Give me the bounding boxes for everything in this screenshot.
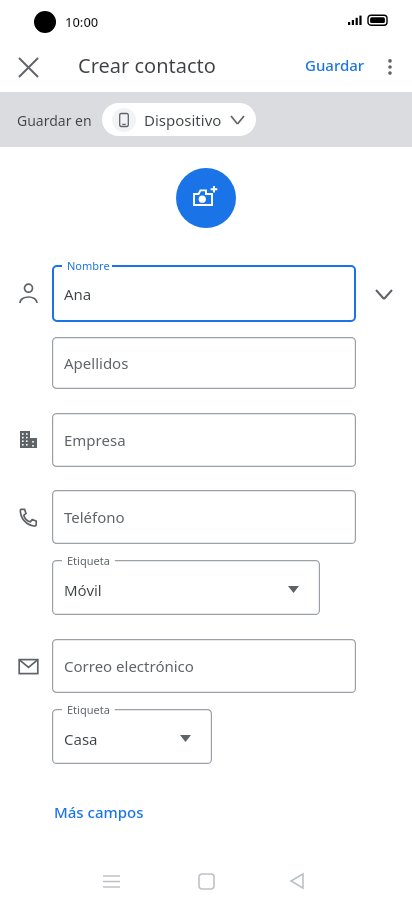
button[interactable]: Dispositivo xyxy=(102,103,256,136)
button[interactable]: Apellidos xyxy=(52,337,356,389)
staticText: Nombre xyxy=(67,258,110,273)
button[interactable]: Ana xyxy=(52,265,356,322)
staticText: Etiqueta xyxy=(67,702,110,717)
button[interactable]: Inicio xyxy=(186,861,226,901)
button[interactable]: Teléfono xyxy=(52,490,356,544)
staticText: Guardar en xyxy=(17,111,92,130)
staticText: Apellidos xyxy=(64,353,129,373)
button[interactable]: Atrás xyxy=(277,861,317,901)
button[interactable]: Expandir nombre xyxy=(364,274,404,314)
staticText: Móvil xyxy=(64,580,102,600)
button[interactable]: Más campos xyxy=(46,797,152,827)
staticText: Dispositivo xyxy=(144,110,222,130)
button[interactable]: Etiqueta xyxy=(52,709,212,764)
button[interactable]: Más opciones xyxy=(370,47,410,87)
button[interactable]: Añadir foto de contacto xyxy=(176,168,236,228)
staticText: Guardar xyxy=(305,55,365,75)
staticText: Crear contacto xyxy=(78,52,216,79)
staticText: Ana xyxy=(64,284,92,304)
staticText: 10:00 xyxy=(65,13,99,31)
staticText: Etiqueta xyxy=(67,553,110,568)
button[interactable]: Empresa xyxy=(52,413,356,467)
staticText: Más campos xyxy=(54,802,144,822)
button[interactable]: Correo electrónico xyxy=(52,639,356,693)
button[interactable]: Guardar xyxy=(297,49,373,81)
staticText: Casa xyxy=(64,729,98,749)
staticText: Correo electrónico xyxy=(64,656,194,676)
button[interactable]: Aplicaciones recientes xyxy=(91,861,131,901)
staticText: Teléfono xyxy=(64,507,125,527)
staticText: Empresa xyxy=(64,430,126,450)
button[interactable]: Etiqueta xyxy=(52,560,320,615)
button[interactable]: Cerrar xyxy=(8,47,48,87)
